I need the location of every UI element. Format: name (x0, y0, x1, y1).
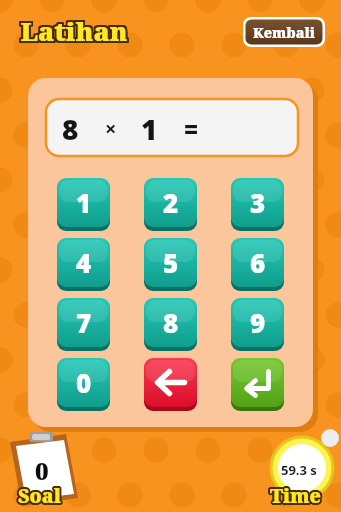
staticText: Time (271, 481, 322, 507)
staticText: Time (270, 483, 321, 509)
staticText: × (105, 115, 117, 142)
button[interactable]: 9 (231, 298, 284, 351)
staticText: Soal (19, 481, 62, 507)
staticText: Time (271, 484, 322, 510)
staticText: Soal (20, 484, 63, 510)
staticText: Soal (18, 483, 61, 509)
staticText: Latihan (22, 14, 130, 49)
staticText: Latihan (22, 15, 130, 50)
staticText: Time (270, 485, 321, 511)
staticText: Soal (17, 482, 60, 508)
staticText: Latihan (18, 13, 126, 48)
button[interactable]: 8 (144, 298, 197, 351)
staticText: 5 (163, 245, 179, 280)
staticText: Latihan (18, 12, 126, 47)
staticText: Kembali (253, 23, 316, 42)
button[interactable]: Backspace (144, 358, 197, 411)
staticText: 9 (250, 305, 266, 340)
staticText: Time (269, 485, 320, 511)
staticText: 59.3 s (281, 461, 317, 479)
staticText: Latihan (18, 11, 126, 46)
staticText: Latihan (20, 13, 128, 48)
staticText: Latihan (20, 15, 128, 50)
staticText: Time (272, 482, 323, 508)
staticText: Time (268, 483, 319, 509)
staticText: Latihan (22, 13, 130, 48)
staticText: Latihan (22, 12, 130, 47)
staticText: Soal (17, 485, 60, 511)
button[interactable]: 6 (231, 238, 284, 291)
staticText: 8 (163, 305, 179, 340)
staticText: Latihan (19, 11, 127, 46)
staticText: Time (271, 482, 322, 508)
button[interactable]: 1 (57, 178, 110, 231)
staticText: Soal (16, 482, 59, 508)
staticText: Latihan (18, 15, 126, 50)
staticText: Latihan (22, 11, 130, 46)
button[interactable]: 4 (57, 238, 110, 291)
staticText: Time (271, 485, 322, 511)
button[interactable]: 3 (231, 178, 284, 231)
staticText: Soal (19, 485, 62, 511)
button[interactable]: 0 (57, 358, 110, 411)
staticText: Time (269, 484, 320, 510)
button[interactable]: 5 (144, 238, 197, 291)
staticText: Soal (16, 484, 59, 510)
staticText: = (184, 112, 199, 145)
staticText: Soal (18, 485, 61, 511)
staticText: 3 (250, 185, 266, 220)
staticText: Time (268, 484, 319, 510)
staticText: Time (270, 481, 321, 507)
staticText: Soal (17, 484, 60, 510)
staticText: 7 (76, 305, 92, 340)
staticText: Time (272, 483, 323, 509)
staticText: 8 (62, 110, 79, 146)
staticText: 2 (163, 185, 179, 220)
staticText: Soal (18, 481, 61, 507)
staticText: Time (268, 482, 319, 508)
staticText: Soal (19, 482, 62, 508)
button[interactable]: 0 (2, 432, 86, 512)
button[interactable]: 7 (57, 298, 110, 351)
staticText: Time (272, 484, 323, 510)
staticText: 0 (35, 454, 49, 487)
button[interactable]: Enter (231, 358, 284, 411)
staticText: Latihan (21, 15, 129, 50)
staticText: Soal (19, 484, 62, 510)
staticText: 1 (76, 185, 92, 220)
staticText: Latihan (21, 11, 129, 46)
staticText: 4 (76, 245, 92, 280)
staticText: Latihan (18, 14, 126, 49)
staticText: 1 (141, 110, 158, 146)
button[interactable]: 59.3 s (268, 430, 340, 502)
staticText: Time (269, 482, 320, 508)
staticText: Soal (16, 483, 59, 509)
staticText: Soal (20, 483, 63, 509)
staticText: 0 (76, 365, 92, 400)
staticText: Soal (17, 481, 60, 507)
button[interactable]: Kembali (243, 17, 325, 47)
button[interactable]: 2 (144, 178, 197, 231)
staticText: Latihan (19, 15, 127, 50)
staticText: Time (269, 481, 320, 507)
staticText: 6 (250, 245, 266, 280)
staticText: Soal (20, 482, 63, 508)
staticText: Latihan (20, 11, 128, 46)
